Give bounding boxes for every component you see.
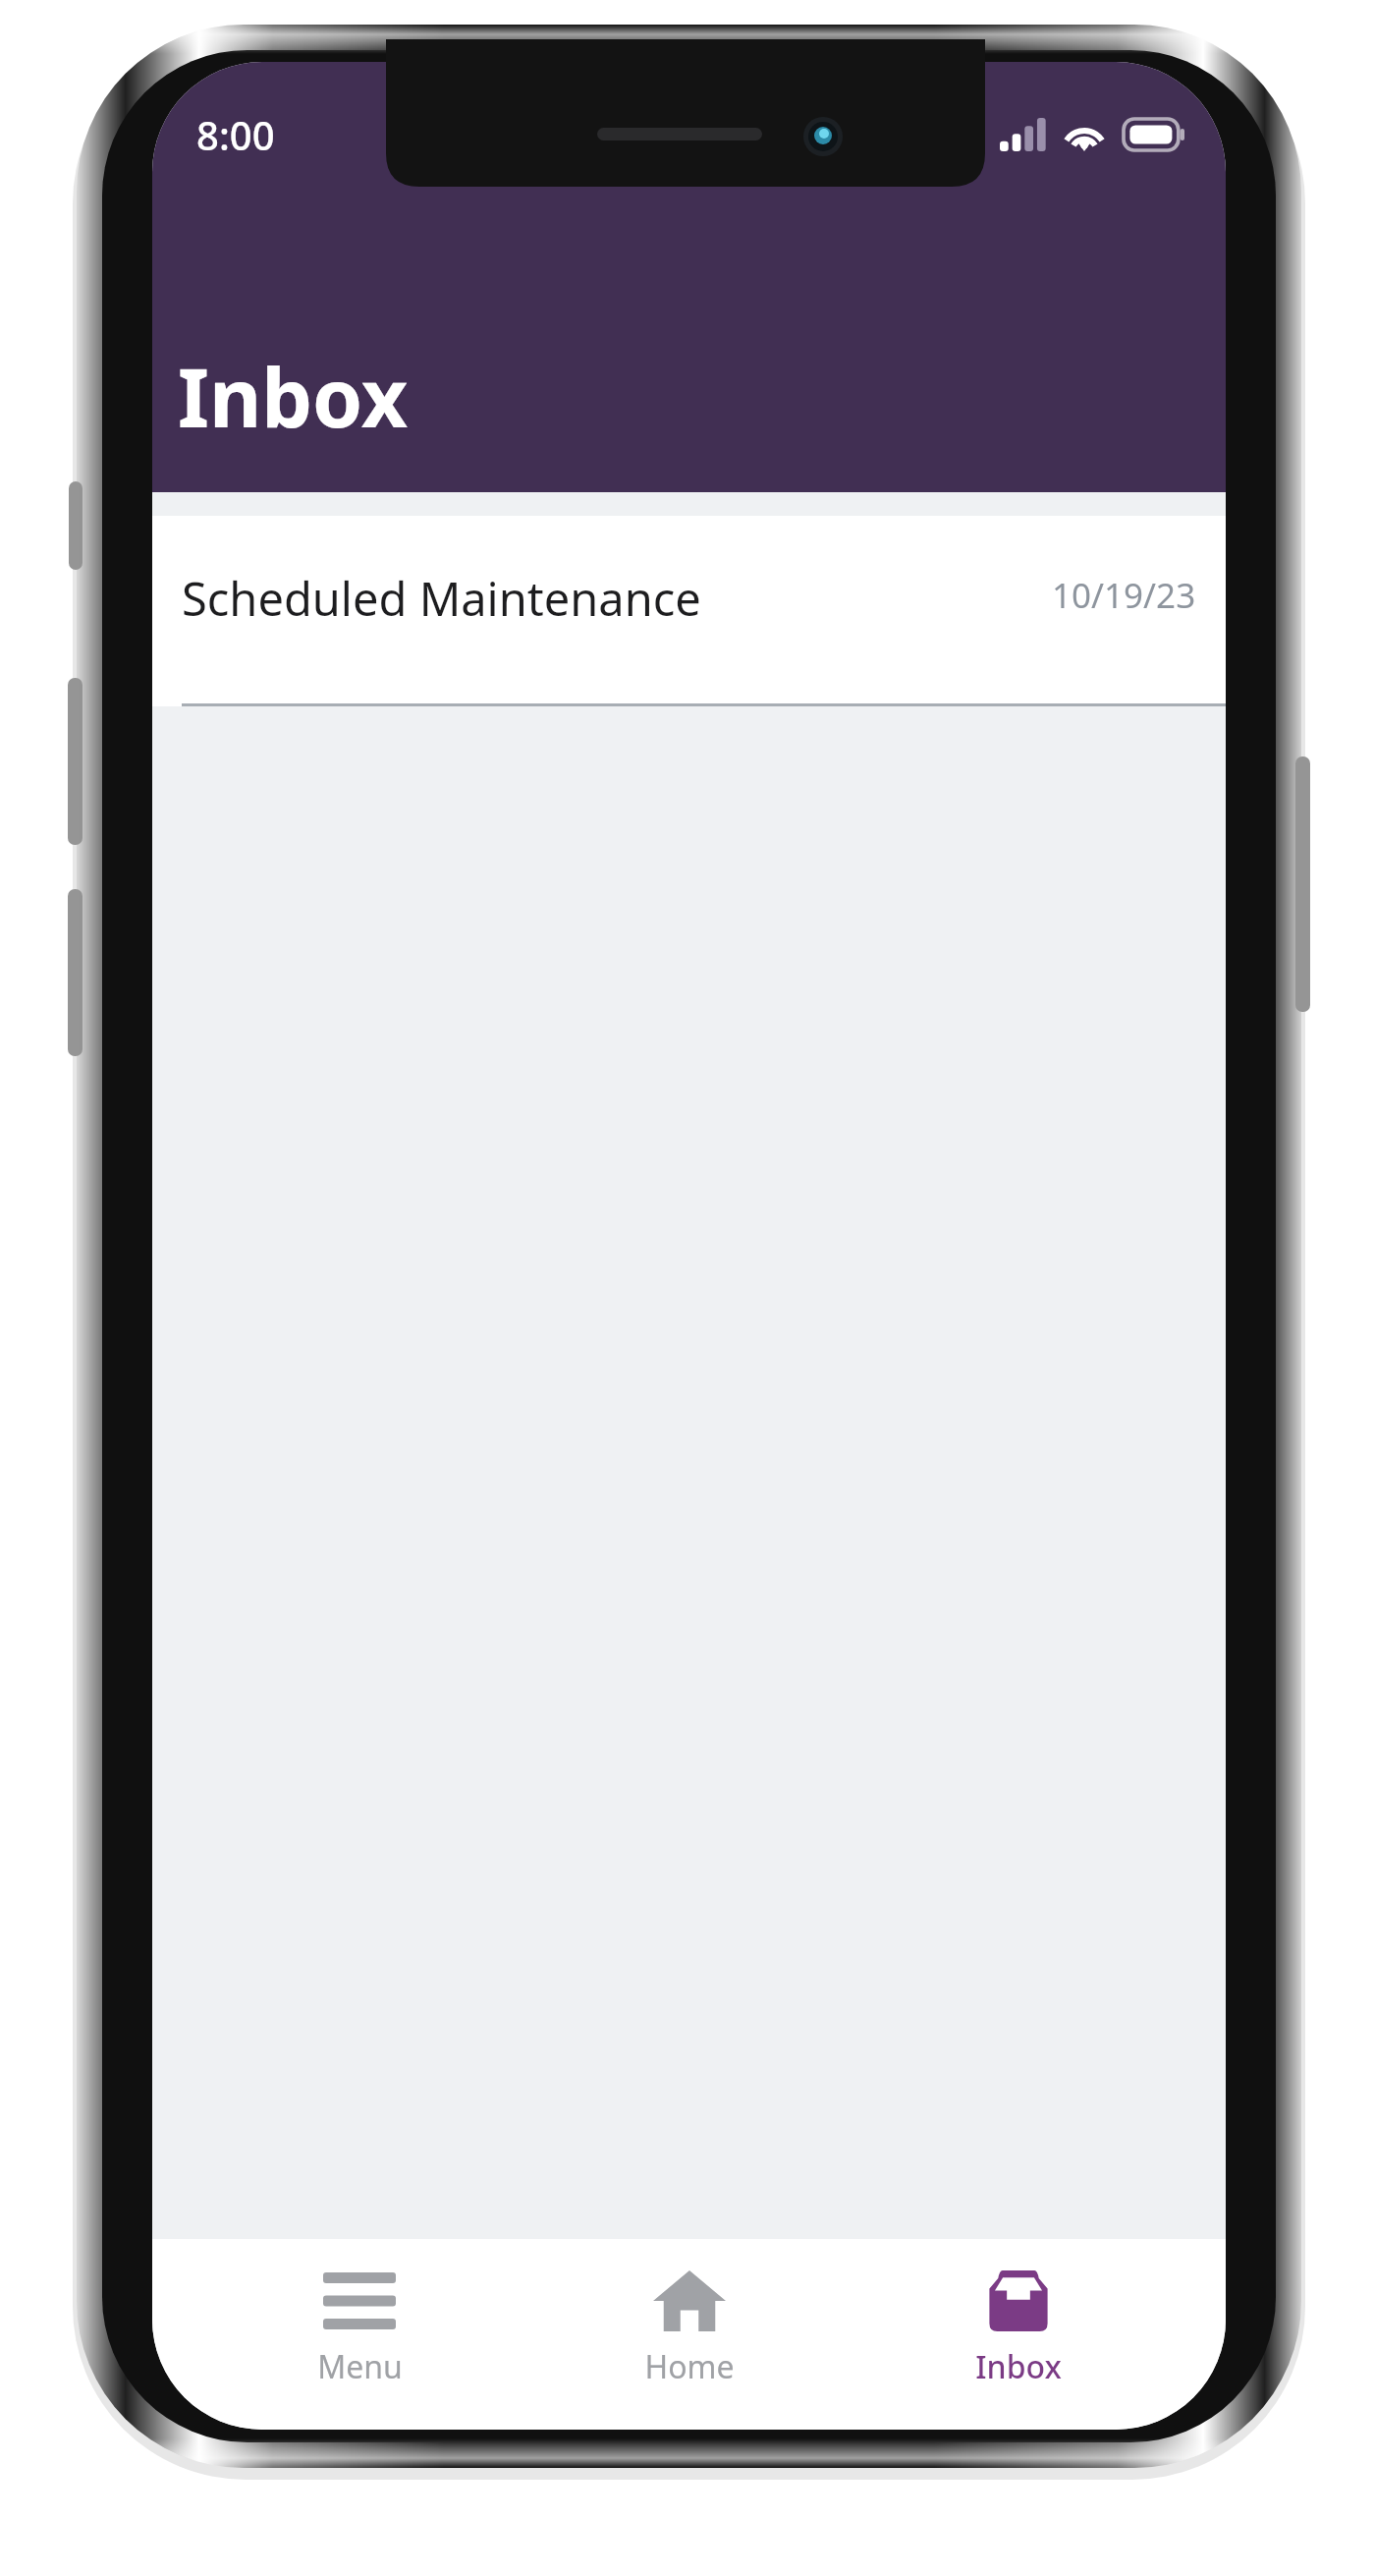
- staticText: Inbox: [178, 341, 409, 451]
- other: Inbox: [982, 2270, 1055, 2331]
- staticText: 8:00: [196, 108, 275, 161]
- staticText: Home: [644, 2345, 735, 2388]
- staticText: 10/19/23: [1052, 572, 1196, 619]
- button[interactable]: Scheduled Maintenance: [152, 516, 1226, 706]
- other: Menu: [323, 2272, 396, 2329]
- button[interactable]: Home: [567, 2265, 812, 2394]
- staticText: Menu: [317, 2345, 403, 2388]
- other: Home: [653, 2270, 726, 2331]
- staticText: Scheduled Maintenance: [182, 567, 1052, 630]
- button[interactable]: Menu: [237, 2265, 482, 2394]
- staticText: Inbox: [975, 2345, 1062, 2388]
- button[interactable]: Inbox: [896, 2265, 1141, 2394]
